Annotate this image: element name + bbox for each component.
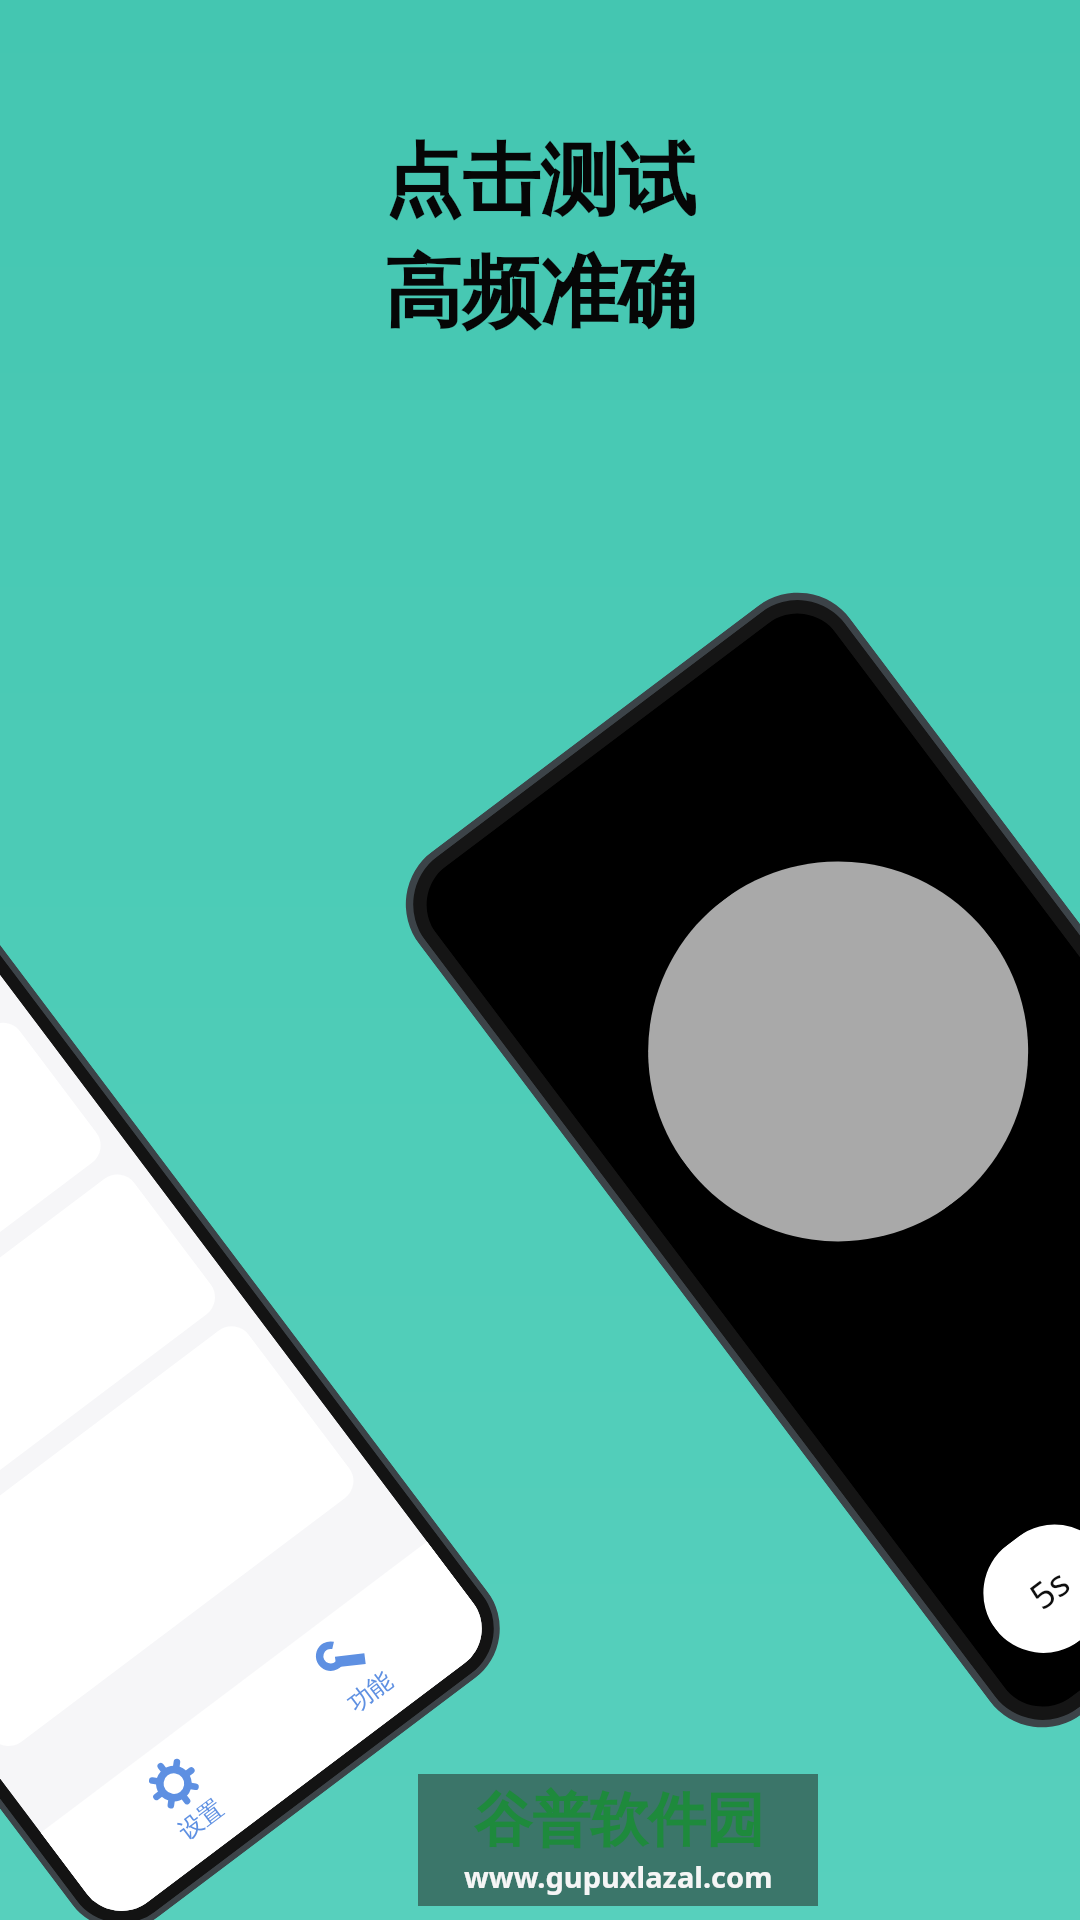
button[interactable] xyxy=(0,1014,109,1419)
staticText: 谷普软件园 xyxy=(474,1784,764,1857)
staticText: 高频准确 xyxy=(384,244,696,342)
button[interactable]: 点击区域 xyxy=(572,785,1080,1317)
staticText: 点击测试 xyxy=(384,132,696,230)
button[interactable]: 设置 xyxy=(101,1721,270,1877)
staticText: www.gupuxlazal.com xyxy=(464,1857,773,1896)
button[interactable]: 5s xyxy=(959,1500,1080,1677)
button[interactable] xyxy=(0,1166,224,1571)
button[interactable]: 功能 xyxy=(270,1593,439,1749)
other: 设置 xyxy=(143,1753,205,1814)
other: 功能 xyxy=(312,1625,374,1687)
staticText: 5s xyxy=(1019,1558,1079,1620)
staticText: 功能 xyxy=(342,1666,398,1718)
button[interactable] xyxy=(0,1317,362,1755)
staticText: 设置 xyxy=(173,1793,229,1846)
